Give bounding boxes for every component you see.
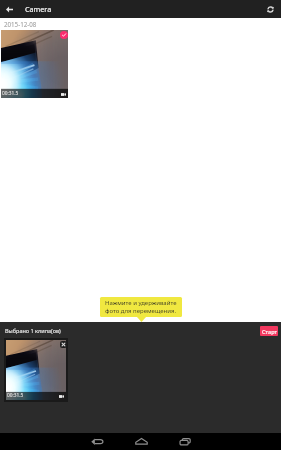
staticText: Нажмите и удерживайте фото для перемещен… <box>105 299 177 315</box>
button[interactable]: Selected <box>60 31 68 39</box>
button[interactable]: Remove clip <box>58 339 68 349</box>
staticText: Camera <box>25 4 52 14</box>
staticText: 2015-12-08 <box>4 20 37 28</box>
button[interactable]: Recents <box>163 433 207 450</box>
button[interactable]: Back <box>75 433 119 450</box>
button[interactable]: Home <box>119 433 163 450</box>
button[interactable]: Refresh <box>262 1 279 18</box>
button[interactable]: Back <box>1 1 18 18</box>
staticText: Выбрано 1 клипа(ов) <box>5 327 61 334</box>
staticText: Старт <box>262 328 277 335</box>
button[interactable]: 00:31.5 <box>6 340 66 400</box>
button[interactable]: 00:31.5 <box>1 30 68 98</box>
button[interactable]: Старт <box>260 326 278 336</box>
staticText: 00:31.5 <box>7 392 24 399</box>
staticText: 00:31.5 <box>2 90 19 97</box>
